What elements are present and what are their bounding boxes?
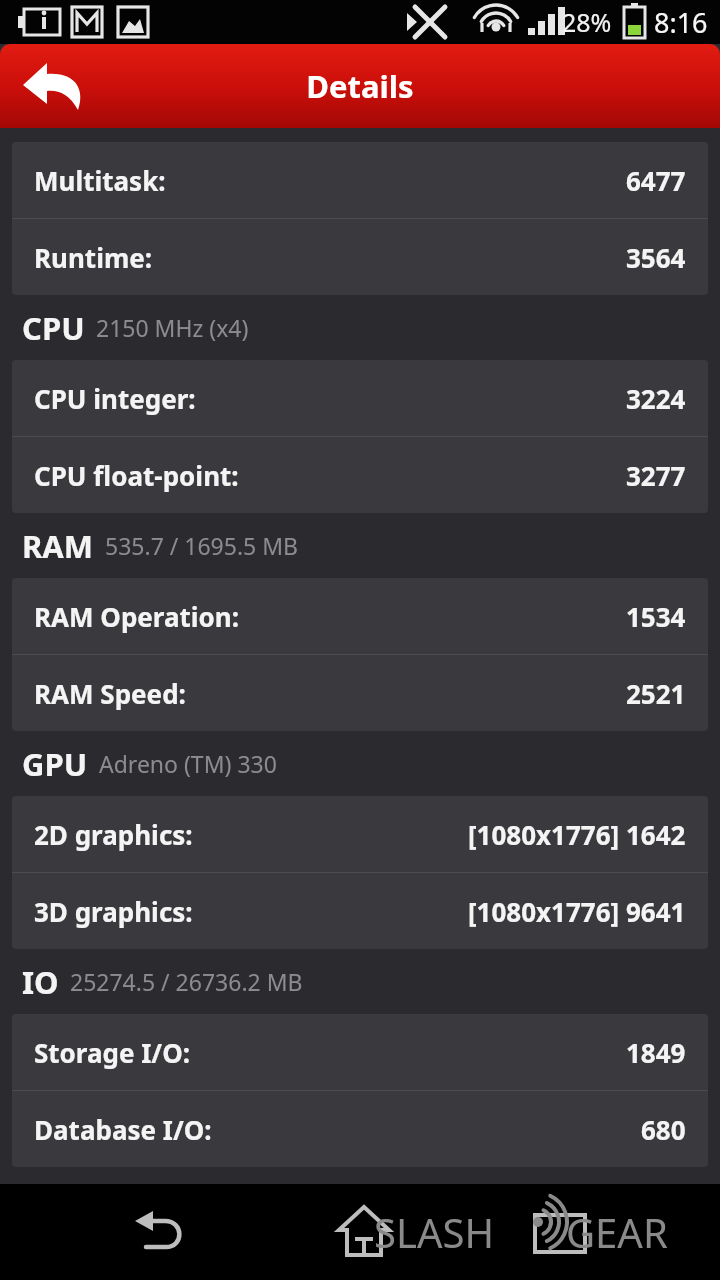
button[interactable]: 3D graphics: [12,873,708,949]
staticText: RAM [22,525,94,567]
staticText: 2521 [626,676,686,711]
staticText: Details [306,65,414,107]
staticText: 3564 [626,240,686,275]
button[interactable]: Home [328,1196,400,1268]
staticText: 6477 [626,163,686,198]
staticText: 1534 [626,599,686,634]
staticText: 2150 MHz (x4) [96,312,249,343]
staticText: GPU [22,743,88,785]
button[interactable]: CPU float-point: [12,437,708,513]
staticText: 28% [562,5,612,39]
staticText: 3224 [626,381,686,416]
button[interactable]: Database I/O: [12,1091,708,1167]
staticText: 535.7 / 1695.5 MB [105,530,299,561]
staticText: 3D graphics: [34,894,193,929]
button[interactable]: Storage I/O: [12,1014,708,1090]
staticText: SLASH [374,1205,495,1259]
button[interactable]: Recent apps [524,1196,596,1268]
staticText: CPU float-point: [34,458,239,493]
staticText: Runtime: [34,240,153,275]
staticText: Adreno (TM) 330 [99,748,277,779]
staticText: RAM Operation: [34,599,240,634]
staticText: 680 [641,1112,686,1147]
button[interactable]: RAM Operation: [12,578,708,654]
staticText: 25274.5 / 26736.2 MB [70,966,303,997]
staticText: 2D graphics: [34,817,193,852]
button[interactable]: Back [126,1196,198,1268]
staticText: [1080x1776] 9641 [468,894,686,929]
button[interactable]: RAM Speed: [12,655,708,731]
staticText: 1849 [626,1035,686,1070]
staticText: CPU integer: [34,381,196,416]
staticText: 8:16 [654,4,708,41]
button[interactable]: Back [14,47,92,125]
staticText: Database I/O: [34,1112,212,1147]
staticText: GEAR [566,1205,668,1259]
button[interactable]: 2D graphics: [12,796,708,872]
staticText: Storage I/O: [34,1035,191,1070]
staticText: IO [22,961,59,1003]
staticText: Multitask: [34,163,166,198]
button[interactable]: CPU integer: [12,360,708,436]
staticText: 3277 [626,458,686,493]
staticText: CPU [22,307,85,349]
button[interactable]: Runtime: [12,219,708,295]
button[interactable]: Multitask: [12,142,708,218]
staticText: RAM Speed: [34,676,186,711]
staticText: [1080x1776] 1642 [468,817,686,852]
